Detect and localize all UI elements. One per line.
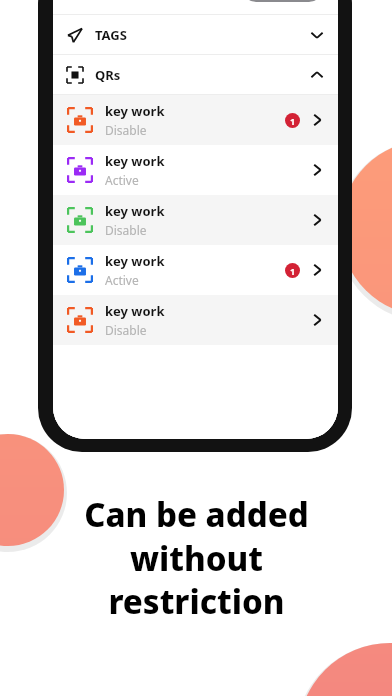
- staticText: Disable: [105, 322, 147, 338]
- button[interactable]: key work: [53, 145, 338, 195]
- staticText: key work: [105, 302, 165, 320]
- staticText: Active: [105, 272, 139, 288]
- staticText: 1: [290, 265, 296, 277]
- other: Tags: [67, 27, 83, 43]
- button[interactable]: QR codes: [53, 55, 338, 94]
- staticText: Can be added without restriction: [84, 492, 309, 623]
- staticText: Disable: [105, 122, 147, 138]
- staticText: key work: [105, 252, 165, 270]
- button[interactable]: key work: [53, 195, 338, 245]
- staticText: QRs: [95, 66, 121, 84]
- staticText: key work: [105, 152, 165, 170]
- button[interactable]: key work: [53, 245, 338, 295]
- button[interactable]: key work: [53, 95, 338, 145]
- staticText: Active: [105, 172, 139, 188]
- button[interactable]: Filters: [241, 0, 324, 2]
- staticText: Disable: [105, 222, 147, 238]
- staticText: key work: [105, 102, 165, 120]
- other: QR codes: [67, 67, 83, 83]
- button[interactable]: key work: [53, 295, 338, 345]
- staticText: 1: [290, 115, 296, 127]
- button[interactable]: Tags: [53, 15, 338, 54]
- staticText: key work: [105, 202, 165, 220]
- staticText: TAGS: [95, 26, 127, 44]
